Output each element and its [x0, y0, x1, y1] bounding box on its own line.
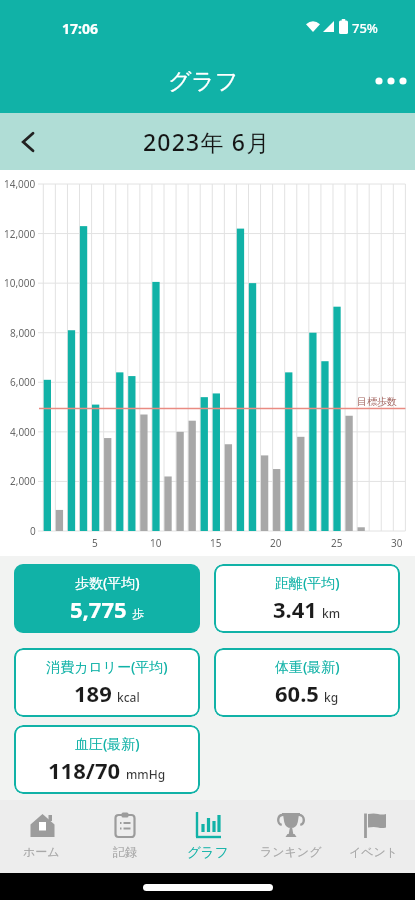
- staticText: 消費カロリー(平均): [46, 657, 168, 676]
- button[interactable]: 2023年 6月: [143, 126, 271, 157]
- staticText: 189: [74, 678, 112, 708]
- staticText: 体重(最新): [275, 657, 340, 676]
- staticText: 6,000: [10, 375, 36, 389]
- staticText: 0: [30, 524, 36, 538]
- staticText: 目標歩数: [357, 395, 397, 408]
- staticText: グラフ: [187, 844, 229, 861]
- staticText: グラフ: [168, 67, 239, 96]
- staticText: 20: [270, 536, 282, 550]
- staticText: 4,000: [10, 425, 36, 439]
- button[interactable]: ホーム: [0, 800, 83, 873]
- button[interactable]: ランキング: [249, 800, 332, 873]
- staticText: イベント: [349, 844, 399, 859]
- staticText: 25: [331, 536, 343, 550]
- staticText: 14,000: [4, 177, 36, 191]
- staticText: 30: [391, 536, 403, 550]
- staticText: 10: [150, 536, 162, 550]
- staticText: 血圧(最新): [75, 734, 140, 753]
- button[interactable]: [0, 114, 56, 170]
- staticText: kcal: [117, 689, 140, 705]
- staticText: 3.41: [273, 594, 317, 624]
- staticText: 距離(平均): [275, 573, 340, 592]
- staticText: 記録: [113, 844, 137, 859]
- staticText: 8,000: [10, 326, 36, 340]
- button[interactable]: 体重(最新): [214, 648, 400, 717]
- button[interactable]: イベント: [332, 800, 415, 873]
- staticText: km: [322, 605, 341, 621]
- staticText: 5: [92, 536, 98, 550]
- staticText: ホーム: [23, 844, 60, 859]
- staticText: 2,000: [10, 474, 36, 488]
- staticText: 15: [210, 536, 222, 550]
- button[interactable]: グラフ: [166, 800, 249, 873]
- staticText: 歩: [132, 606, 144, 621]
- staticText: 歩数(平均): [75, 573, 140, 592]
- staticText: 17:06: [62, 19, 98, 38]
- button[interactable]: 記録: [83, 800, 166, 873]
- staticText: 75%: [352, 19, 378, 37]
- staticText: ランキング: [260, 844, 322, 859]
- staticText: 60.5: [275, 678, 319, 708]
- button[interactable]: [367, 57, 415, 105]
- button[interactable]: 消費カロリー(平均): [14, 648, 200, 717]
- staticText: 5,775: [70, 594, 127, 624]
- button[interactable]: 歩数(平均): [14, 564, 200, 633]
- staticText: 10,000: [4, 276, 36, 290]
- staticText: kg: [324, 689, 339, 705]
- staticText: 12,000: [4, 227, 36, 241]
- button[interactable]: 距離(平均): [214, 564, 400, 633]
- staticText: mmHg: [126, 766, 166, 782]
- staticText: 118/70: [48, 755, 121, 785]
- button[interactable]: 血圧(最新): [14, 725, 200, 794]
